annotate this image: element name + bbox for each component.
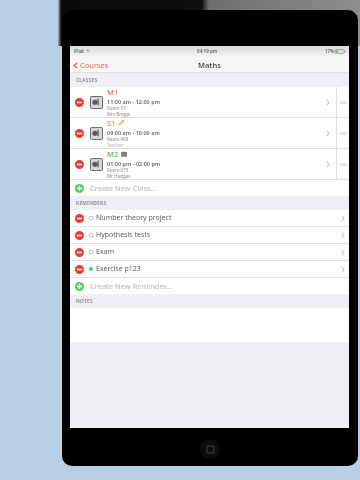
staticText: 04:19 pm: [197, 48, 218, 54]
button[interactable]: Hypothesis tests: [70, 227, 349, 243]
button[interactable]: M2: [70, 149, 349, 179]
button[interactable]: Home: [200, 439, 220, 459]
staticText: M1: [107, 87, 119, 97]
staticText: REMINDERS: [76, 200, 107, 207]
button[interactable]: Number theory project: [70, 210, 349, 226]
staticText: S1: [107, 118, 116, 128]
button[interactable]: Courses: [73, 60, 109, 70]
staticText: Exercise p123: [96, 264, 341, 274]
staticText: Hypothesis tests: [96, 230, 341, 240]
staticText: Teacher: [107, 142, 124, 148]
staticText: iPad: [74, 48, 84, 54]
staticText: Maths: [198, 60, 221, 70]
staticText: 11:00 am - 12:00 pm: [107, 98, 160, 105]
staticText: Create New Reminder...: [90, 281, 172, 291]
staticText: Room 465: [107, 136, 129, 142]
staticText: Advanced Features: [0, 12, 360, 39]
staticText: Room 675: [107, 167, 129, 173]
staticText: Create New Class...: [90, 183, 157, 193]
staticText: 09:00 am - 10:00 am: [107, 129, 160, 136]
staticText: Exam: [96, 247, 341, 257]
staticText: Courses: [80, 60, 109, 70]
button[interactable]: Create New Reminder...: [70, 278, 349, 294]
staticText: Room 57: [107, 105, 126, 111]
staticText: Mrs Briggs: [107, 111, 130, 117]
button[interactable]: M1: [70, 87, 349, 117]
staticText: 01:00 pm - 02:00 pm: [107, 160, 161, 167]
staticText: Number theory project: [96, 213, 341, 223]
button[interactable]: S1: [70, 118, 349, 148]
staticText: 17%: [325, 48, 334, 54]
staticText: M2: [107, 149, 119, 159]
button[interactable]: Exercise p123: [70, 261, 349, 277]
staticText: NOTES: [76, 298, 93, 305]
staticText: CLASSES: [76, 77, 98, 84]
button[interactable]: Exam: [70, 244, 349, 260]
staticText: Mr Hodges: [107, 173, 131, 179]
button[interactable]: Create New Class...: [70, 180, 349, 196]
